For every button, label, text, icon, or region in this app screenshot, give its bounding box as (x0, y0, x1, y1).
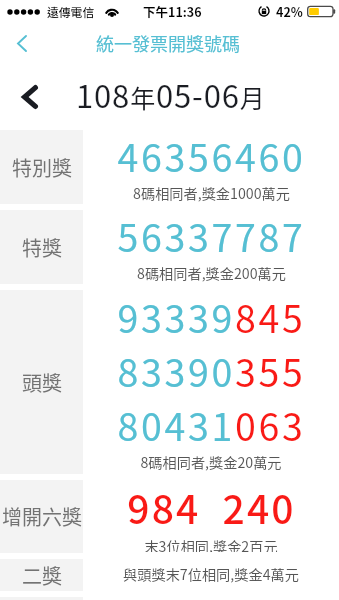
button[interactable]: 頭獎 (0, 290, 339, 474)
staticText: 與頭獎末7位相同,獎金4萬元 (123, 564, 299, 585)
staticText: 統一發票開獎號碼 (96, 30, 240, 56)
staticText: 56337787 (117, 208, 306, 262)
staticText: 93339845 (117, 289, 306, 343)
staticText: 特別獎 (12, 153, 72, 182)
staticText: 80431063 (117, 397, 306, 451)
staticText: 二獎 (22, 561, 62, 590)
staticText: 下午11:36 (143, 2, 202, 20)
staticText: 83390355 (117, 343, 306, 397)
staticText: 108年05-06月 (76, 72, 266, 117)
button[interactable]: 特獎 (0, 210, 339, 284)
staticText: 遠傳電信 (47, 3, 95, 20)
staticText: 特獎 (22, 233, 62, 262)
button[interactable]: Previous month (8, 75, 52, 119)
staticText: 8碼相同者,獎金1000萬元 (133, 183, 290, 202)
button[interactable]: 二獎 (0, 559, 339, 591)
staticText: 頭獎 (22, 368, 62, 397)
staticText: 末3位相同,獎金2百元 (144, 536, 278, 552)
staticText: 增開六獎 (2, 502, 82, 531)
staticText: 8碼相同者,獎金200萬元 (137, 263, 286, 282)
button[interactable]: 增開六獎 (0, 480, 339, 553)
staticText: 46356460 (117, 128, 306, 182)
button[interactable]: Back (0, 22, 44, 64)
staticText: 8碼相同者,獎金20萬元 (140, 452, 282, 473)
staticText: 42% (276, 2, 303, 20)
button[interactable]: 特別獎 (0, 130, 339, 204)
staticText: 984 240 (127, 479, 296, 535)
